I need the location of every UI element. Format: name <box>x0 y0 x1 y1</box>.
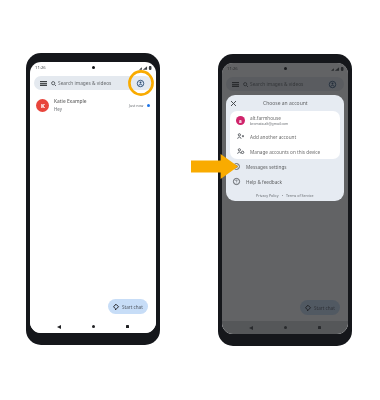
button[interactable]: Recent apps <box>121 320 134 333</box>
staticText: alt.farmhouse <box>250 115 281 121</box>
button[interactable]: Home <box>279 321 292 334</box>
button[interactable]: Start chat <box>113 299 143 314</box>
staticText: Hey <box>54 106 62 112</box>
staticText: 11:26 <box>35 65 46 71</box>
button[interactable]: Messages settings <box>232 159 340 174</box>
button[interactable]: Help & feedback <box>232 174 340 189</box>
staticText: Manage accounts on this device <box>250 149 321 155</box>
staticText: Start chat <box>314 305 335 311</box>
staticText: K <box>41 102 45 110</box>
staticText: bromata.alt@gmail.com <box>250 121 289 126</box>
button[interactable]: Recent apps <box>313 321 326 334</box>
button[interactable]: Terms of Service <box>286 193 314 198</box>
button[interactable]: Search images & videos <box>34 76 152 90</box>
staticText: Help & feedback <box>246 179 283 185</box>
staticText: Katie Example <box>54 98 87 105</box>
button[interactable]: Manage accounts on this device <box>236 144 336 159</box>
staticText: Messages settings <box>246 164 287 170</box>
button[interactable]: Home <box>87 320 100 333</box>
staticText: • <box>279 193 286 198</box>
button[interactable]: Add another account <box>236 129 336 144</box>
button[interactable]: a <box>236 111 336 129</box>
staticText: Just now <box>129 103 144 108</box>
staticText: Search images & videos <box>58 80 112 87</box>
button[interactable]: Privacy Policy <box>256 193 279 198</box>
staticText: Add another account <box>250 134 297 140</box>
staticText: Choose an account <box>263 100 308 107</box>
staticText: Start chat <box>122 304 143 310</box>
button[interactable]: Close <box>231 101 236 106</box>
button[interactable]: K <box>36 95 151 115</box>
button[interactable]: Back <box>244 321 257 334</box>
staticText: a <box>239 118 242 124</box>
button[interactable]: Back <box>52 320 65 333</box>
button[interactable]: Account <box>136 79 145 88</box>
staticText: Search images & videos <box>250 81 304 88</box>
staticText: 11:26 <box>227 66 238 72</box>
